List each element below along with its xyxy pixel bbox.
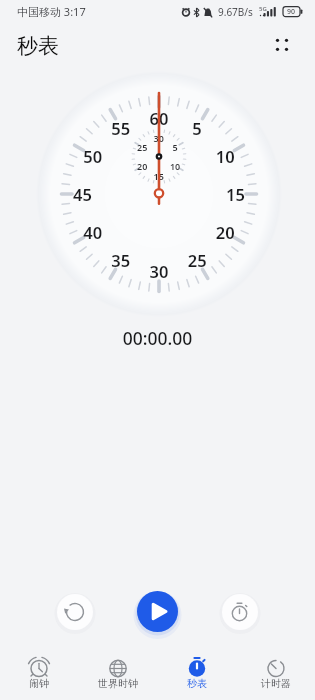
- staticText: 闹钟: [29, 677, 49, 690]
- button[interactable]: [137, 591, 178, 632]
- button[interactable]: [222, 594, 258, 630]
- button[interactable]: [57, 594, 93, 630]
- button[interactable]: 世界时钟: [78, 644, 157, 700]
- staticText: 中国移动 3:17: [17, 4, 86, 19]
- staticText: 秒表: [187, 677, 207, 690]
- staticText: 世界时钟: [98, 677, 138, 690]
- staticText: 秒表: [17, 33, 59, 59]
- staticText: 计时器: [261, 677, 291, 690]
- button[interactable]: 秒表: [157, 644, 236, 700]
- button[interactable]: 计时器: [236, 644, 315, 700]
- staticText: 9.67B/s: [218, 5, 253, 19]
- staticText: 00:00.00: [0, 326, 315, 350]
- button[interactable]: 闹钟: [0, 644, 78, 700]
- button[interactable]: [268, 31, 296, 59]
